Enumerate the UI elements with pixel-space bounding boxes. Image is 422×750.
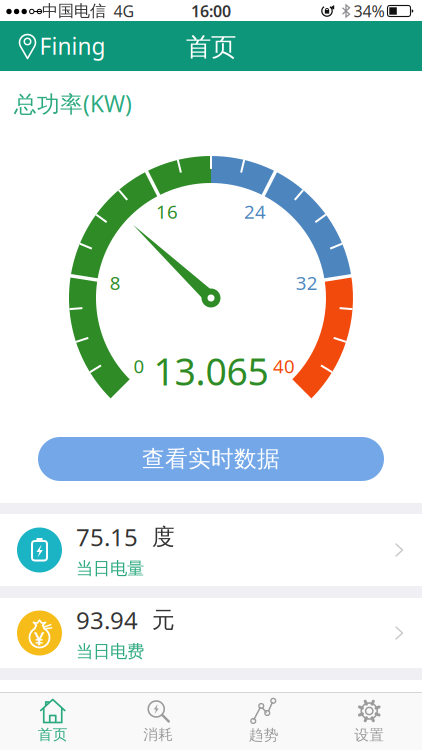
staticText: 设置 (354, 726, 384, 744)
button[interactable]: ¥ (0, 598, 422, 668)
staticText: 8 (110, 270, 121, 295)
staticText: 消耗 (143, 725, 173, 743)
button[interactable]: Fining (0, 21, 110, 71)
button[interactable]: 首页 (0, 693, 105, 748)
staticText: 24 (244, 199, 266, 224)
staticText: 首页 (186, 31, 236, 62)
staticText: 0 (133, 354, 144, 378)
staticText: 34% (353, 0, 384, 22)
staticText: 中国电信 (42, 1, 106, 21)
staticText: 元 (138, 606, 175, 634)
staticText: 75.15 (76, 521, 138, 553)
staticText: 16 (156, 199, 178, 224)
button[interactable]: 设置 (316, 693, 422, 748)
staticText: Fining (39, 31, 105, 61)
staticText: 首页 (38, 725, 68, 743)
staticText: 趋势 (249, 726, 279, 744)
staticText: 40 (273, 354, 295, 378)
staticText: 查看实时数据 (142, 445, 280, 473)
staticText: 32 (296, 270, 318, 295)
staticText: 总功率(KW) (14, 88, 132, 118)
staticText: 当日电费 (76, 641, 144, 662)
button[interactable]: 查看实时数据 (38, 437, 384, 481)
staticText: 度 (138, 523, 175, 551)
staticText: ¥ (34, 626, 45, 650)
staticText: 93.94 (76, 604, 138, 636)
staticText: 13.065 (153, 346, 268, 396)
button[interactable]: 消耗 (105, 693, 211, 748)
button[interactable]: 75.15 (0, 514, 422, 586)
staticText: 当日电量 (76, 558, 144, 579)
staticText: 16:00 (191, 0, 231, 22)
button[interactable]: 趋势 (211, 693, 316, 748)
staticText: 4G (113, 0, 134, 22)
